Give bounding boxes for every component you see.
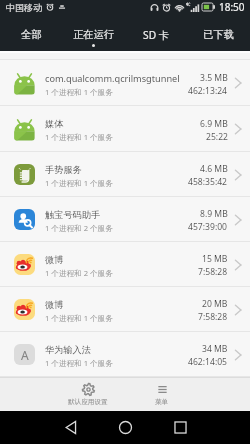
staticText: 默认应用设置 bbox=[68, 398, 108, 406]
staticText: 457:39:00 bbox=[188, 221, 228, 233]
staticText: 1 个进程和 1 个服务 bbox=[45, 87, 113, 97]
button[interactable]: 手势服务 bbox=[0, 152, 250, 197]
staticText: 1 个进程和 1 个服务 bbox=[45, 178, 113, 188]
staticText: 462:13:24 bbox=[188, 85, 228, 97]
staticText: SD 卡 bbox=[143, 28, 169, 42]
button[interactable]: 默认应用设置 bbox=[61, 377, 115, 411]
staticText: 4.6 MB bbox=[200, 163, 228, 175]
staticText: 全部 bbox=[21, 28, 42, 41]
staticText: 25:22 bbox=[206, 131, 228, 143]
button[interactable]: Back bbox=[54, 411, 87, 444]
staticText: 触宝号码助手 bbox=[45, 209, 101, 221]
staticText: 462:14:05 bbox=[188, 356, 228, 368]
button[interactable]: SD 卡 bbox=[124, 20, 187, 51]
staticText: 已下载 bbox=[203, 28, 234, 41]
staticText: 20 MB bbox=[202, 298, 228, 310]
staticText: 微博 bbox=[45, 299, 64, 311]
staticText: 3.5 MB bbox=[200, 72, 228, 84]
staticText: 华为输入法 bbox=[45, 344, 91, 356]
staticText: 1 个进程和 1 个服务 bbox=[45, 132, 113, 142]
staticText: 8.9 MB bbox=[200, 208, 228, 220]
button[interactable]: 菜单 bbox=[135, 377, 189, 411]
staticText: 1 个进程和 2 个服务 bbox=[45, 268, 113, 278]
staticText: 1 个进程和 1 个服务 bbox=[45, 313, 113, 323]
button[interactable]: A bbox=[0, 332, 250, 377]
button[interactable]: 已下载 bbox=[187, 20, 250, 51]
staticText: 458:35:42 bbox=[188, 176, 228, 188]
staticText: 15 MB bbox=[202, 253, 228, 265]
staticText: 媒体 bbox=[45, 118, 64, 130]
button[interactable]: com.qualcomm.qcrilmsgtunnel bbox=[0, 60, 250, 106]
button[interactable]: 微博 bbox=[0, 242, 250, 287]
staticText: 7:58:28 bbox=[198, 311, 228, 323]
staticText: 微博 bbox=[45, 254, 64, 266]
staticText: com.qualcomm.qcrilmsgtunnel bbox=[45, 72, 180, 85]
staticText: 7:58:28 bbox=[198, 266, 228, 278]
button[interactable]: 微博 bbox=[0, 287, 250, 332]
staticText: 1 个进程和 1 个服务 bbox=[45, 358, 113, 368]
staticText: A bbox=[21, 347, 29, 363]
button[interactable]: Recent apps bbox=[164, 411, 197, 444]
button[interactable]: 全部 bbox=[0, 20, 62, 51]
staticText: 1 个进程和 2 个服务 bbox=[45, 223, 113, 233]
staticText: 中国移动 bbox=[6, 2, 42, 13]
staticText: 正在运行 bbox=[73, 28, 114, 41]
staticText: 菜单 bbox=[155, 398, 169, 406]
button[interactable]: 触宝号码助手 bbox=[0, 197, 250, 242]
staticText: 34 MB bbox=[202, 343, 228, 355]
button[interactable]: 媒体 bbox=[0, 106, 250, 152]
button[interactable]: 正在运行 bbox=[62, 20, 124, 51]
button[interactable]: Home bbox=[109, 411, 142, 444]
staticText: 18:50 bbox=[219, 0, 245, 14]
staticText: 手势服务 bbox=[45, 164, 82, 176]
staticText: 6.9 MB bbox=[200, 118, 228, 130]
